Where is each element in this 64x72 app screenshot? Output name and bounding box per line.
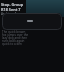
staticText: Stop. Group [1,2,24,7]
button[interactable] [2,13,62,30]
staticText: Archives 4pm [1,12,22,16]
staticText: The quick brown fox jumps over the lazy … [2,30,29,46]
staticText: R18 Sent 7 [1,7,21,12]
